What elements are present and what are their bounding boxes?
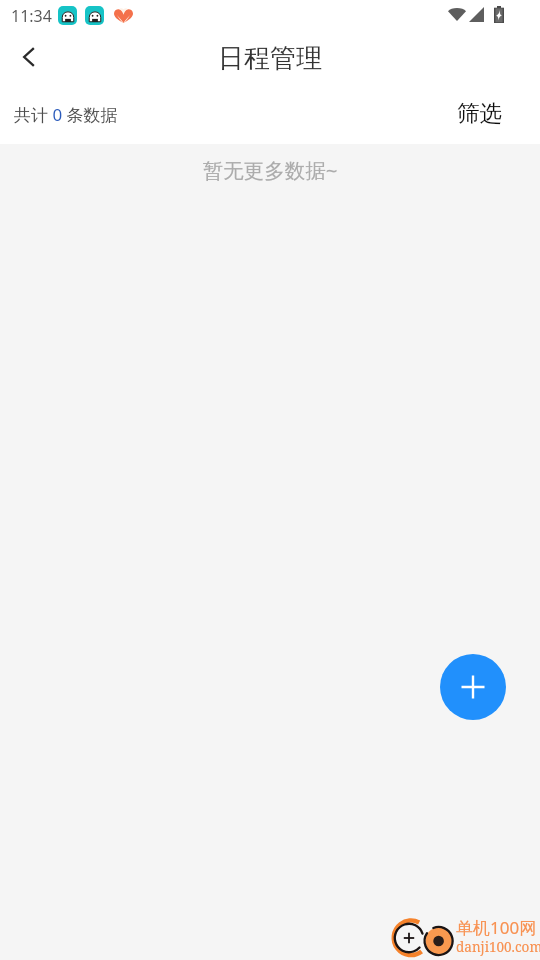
staticText: 筛选	[457, 99, 502, 127]
staticText: 暂无更多数据~	[0, 156, 540, 184]
staticText: 单机100网	[456, 916, 537, 939]
staticText: 日程管理	[218, 42, 322, 75]
button[interactable]: Back	[0, 32, 54, 82]
staticText: 11:34	[11, 5, 52, 27]
button[interactable]: Add schedule	[440, 654, 506, 720]
staticText: danji100.com	[456, 938, 540, 956]
button[interactable]: 筛选	[435, 87, 540, 143]
staticText: 共计 0 条数据	[14, 103, 118, 126]
